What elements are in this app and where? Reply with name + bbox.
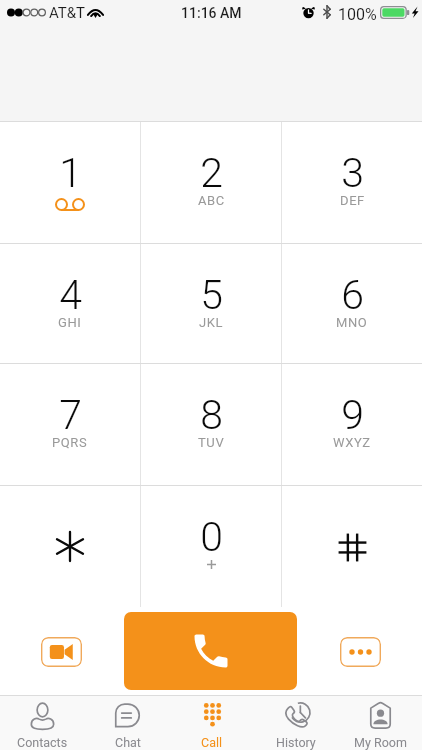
staticText: 3 — [341, 149, 364, 197]
button[interactable]: 1 voicemail — [0, 122, 140, 243]
staticText: 2 — [200, 149, 223, 197]
button[interactable]: 4 — [0, 244, 140, 363]
staticText: Contacts — [17, 735, 68, 750]
button[interactable]: Call — [124, 612, 297, 690]
button[interactable]: 7 — [0, 364, 140, 485]
staticText: JKL — [199, 315, 224, 330]
button[interactable]: History — [254, 696, 338, 750]
staticText: 8 — [200, 391, 223, 439]
staticText: GHI — [58, 315, 82, 330]
button[interactable]: 2 — [141, 122, 281, 243]
staticText: PQRS — [52, 435, 88, 450]
staticText: 9 — [341, 391, 364, 439]
staticText: 4 — [59, 271, 82, 319]
staticText: 6 — [341, 271, 364, 319]
button[interactable]: pound — [282, 486, 422, 607]
staticText: AT&T — [49, 4, 86, 22]
staticText: 0 — [200, 513, 223, 561]
staticText: Chat — [115, 735, 141, 750]
staticText: My Room — [354, 735, 407, 750]
staticText: ABC — [198, 193, 225, 208]
staticText: Call — [201, 735, 223, 750]
button[interactable]: 0 plus — [141, 486, 281, 607]
staticText: 7 — [59, 391, 82, 439]
button[interactable]: star — [0, 486, 140, 607]
staticText: 5 — [200, 271, 223, 319]
button[interactable]: Contacts — [0, 696, 85, 750]
button[interactable]: Call — [170, 696, 254, 750]
button[interactable]: 9 — [282, 364, 422, 485]
button[interactable]: My Room — [338, 696, 422, 750]
staticText: 1 — [59, 149, 82, 197]
staticText: DEF — [340, 193, 365, 208]
button[interactable]: 3 — [282, 122, 422, 243]
button[interactable]: Video call — [41, 637, 82, 667]
staticText: 11:16 AM — [181, 5, 242, 21]
button[interactable]: 5 — [141, 244, 281, 363]
staticText: MNO — [336, 315, 368, 330]
button[interactable]: 8 — [141, 364, 281, 485]
button[interactable]: Chat — [85, 696, 170, 750]
staticText: 100% — [338, 5, 377, 24]
staticText: History — [276, 735, 316, 750]
staticText: TUV — [198, 435, 225, 450]
button[interactable]: 6 — [282, 244, 422, 363]
staticText: WXYZ — [333, 435, 371, 450]
button[interactable]: More options — [340, 637, 381, 667]
